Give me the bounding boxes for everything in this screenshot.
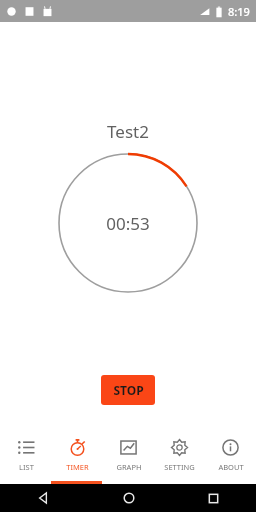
button[interactable]: Back — [0, 484, 86, 512]
button[interactable]: LIST — [0, 430, 52, 484]
staticText: SETTING — [164, 462, 195, 472]
staticText: 8:19 — [228, 4, 250, 19]
button[interactable]: STOP — [101, 375, 155, 405]
button[interactable]: Home — [86, 484, 171, 512]
button[interactable]: TIMER — [52, 430, 103, 484]
staticText: LIST — [19, 462, 34, 472]
staticText: Test2 — [107, 120, 149, 143]
staticText: STOP — [113, 382, 144, 398]
staticText: 00:53 — [106, 212, 150, 235]
staticText: GRAPH — [116, 462, 142, 472]
button[interactable]: Recent apps — [171, 484, 256, 512]
button[interactable]: SETTING — [154, 430, 205, 484]
staticText: TIMER — [66, 462, 89, 472]
staticText: ABOUT — [218, 462, 244, 472]
button[interactable]: GRAPH — [103, 430, 154, 484]
button[interactable]: ABOUT — [205, 430, 256, 484]
